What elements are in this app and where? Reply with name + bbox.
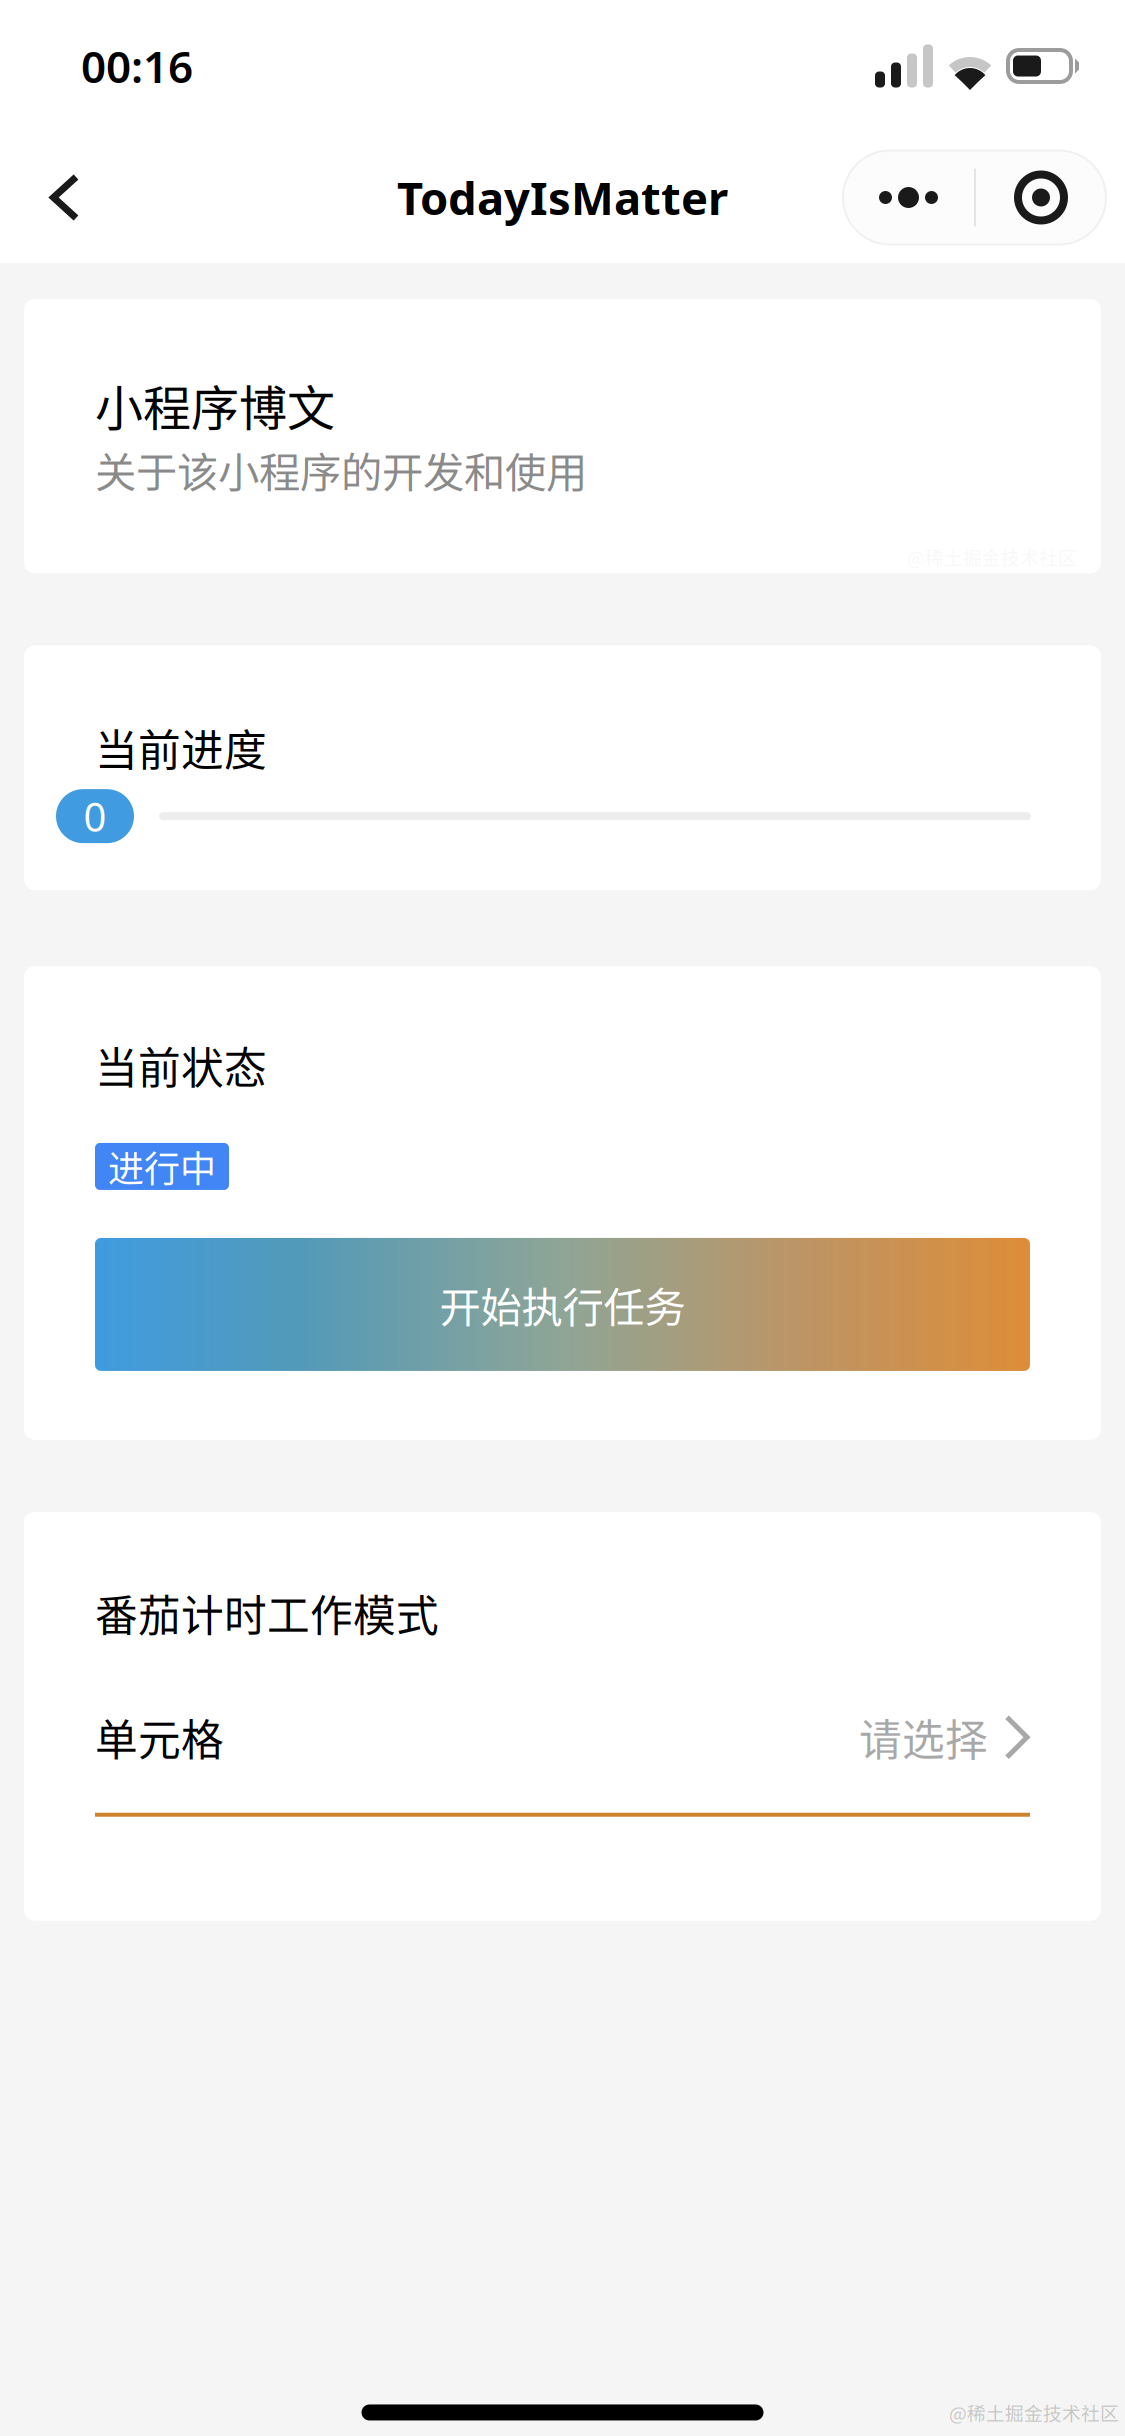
staticText: 关于该小程序的开发和使用 [95, 439, 587, 499]
staticText: 单元格 [95, 1706, 224, 1768]
staticText: 当前状态 [95, 1034, 267, 1096]
staticText: 0 [83, 790, 106, 843]
button[interactable]: 开始执行任务 [95, 1238, 1030, 1371]
button[interactable]: Back [0, 142, 109, 252]
staticText: 番茄计时工作模式 [95, 1582, 439, 1644]
staticText: 小程序博文 [95, 370, 335, 439]
staticText: 请选择 [859, 1706, 988, 1768]
staticText: 开始执行任务 [439, 1274, 685, 1334]
button[interactable]: 单元格 [95, 1707, 1030, 1817]
staticText: 00:16 [81, 37, 193, 95]
staticText: TodayIsMatter [397, 167, 728, 228]
staticText: 进行中 [108, 1140, 216, 1192]
button[interactable]: More options and close mini program [843, 142, 1125, 252]
staticText: @稀土掘金技术社区 [949, 2399, 1119, 2426]
staticText: 当前进度 [95, 716, 267, 778]
